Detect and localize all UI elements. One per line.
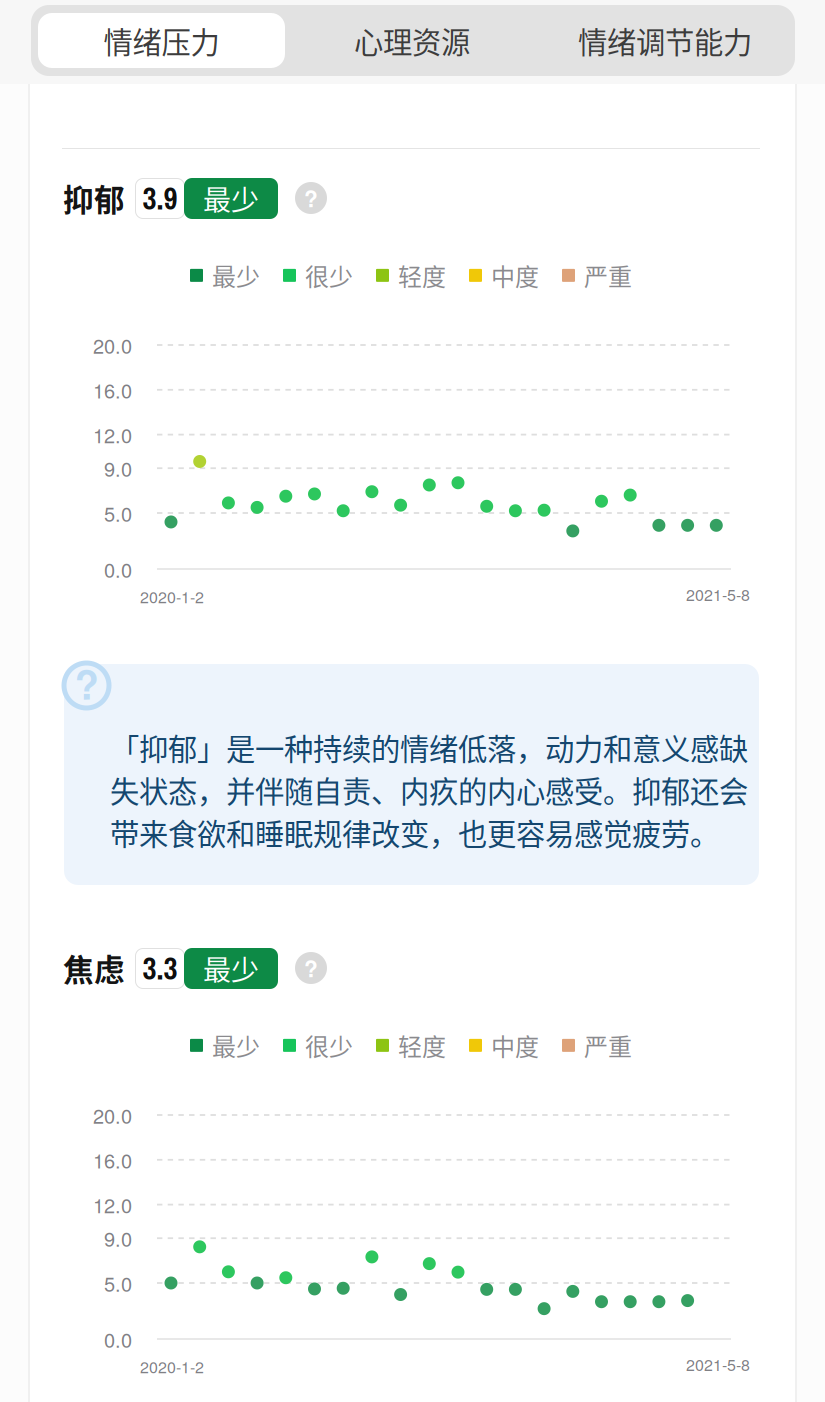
staticText: 2021-5-8 (686, 582, 750, 605)
staticText: ? (304, 182, 318, 214)
staticText: 12.0 (93, 420, 132, 449)
staticText: 16.0 (93, 375, 132, 404)
staticText: 最少 (212, 1028, 260, 1063)
staticText: 5.0 (104, 1269, 132, 1297)
staticText: 2021-5-8 (686, 1352, 750, 1375)
staticText: 0.0 (104, 1325, 132, 1353)
staticText: 最少 (203, 178, 259, 219)
button[interactable]: 心理资源 (292, 13, 532, 68)
staticText: 2020-1-2 (140, 1355, 204, 1378)
staticText: 12.0 (93, 1190, 132, 1219)
staticText: 5.0 (104, 499, 132, 527)
staticText: 心理资源 (354, 19, 470, 62)
staticText: 2020-1-2 (140, 585, 204, 608)
staticText: 9.0 (104, 1224, 132, 1252)
button[interactable]: 情绪压力 (38, 13, 285, 68)
staticText: 很少 (305, 1028, 353, 1063)
staticText: 3.3 (142, 948, 177, 989)
staticText: 中度 (491, 1028, 539, 1063)
staticText: 20.0 (93, 1101, 132, 1129)
staticText: ? (304, 952, 318, 984)
staticText: ? (74, 655, 98, 712)
staticText: 情绪压力 (103, 19, 219, 62)
staticText: 9.0 (104, 454, 132, 482)
staticText: 3.9 (142, 178, 177, 219)
staticText: 情绪调节能力 (578, 19, 752, 62)
staticText: 严重 (584, 1028, 632, 1063)
button[interactable]: 关于焦虑 (295, 952, 327, 984)
staticText: 0.0 (104, 555, 132, 583)
staticText: 20.0 (93, 331, 132, 359)
staticText: 严重 (584, 258, 632, 293)
button[interactable]: 关于抑郁 (295, 182, 327, 214)
staticText: 最少 (203, 948, 259, 989)
staticText: 16.0 (93, 1145, 132, 1174)
staticText: 很少 (305, 258, 353, 293)
staticText: 最少 (212, 258, 260, 293)
button[interactable]: 情绪调节能力 (540, 13, 790, 68)
staticText: 焦虑 (63, 946, 125, 990)
staticText: 中度 (491, 258, 539, 293)
staticText: 轻度 (398, 1028, 446, 1063)
staticText: 轻度 (398, 258, 446, 293)
staticText: 抑郁 (63, 176, 125, 220)
staticText: 「抑郁」是一种持续的情绪低落，动力和意义感缺失状态，并伴随自责、内疚的内心感受。… (110, 726, 748, 853)
